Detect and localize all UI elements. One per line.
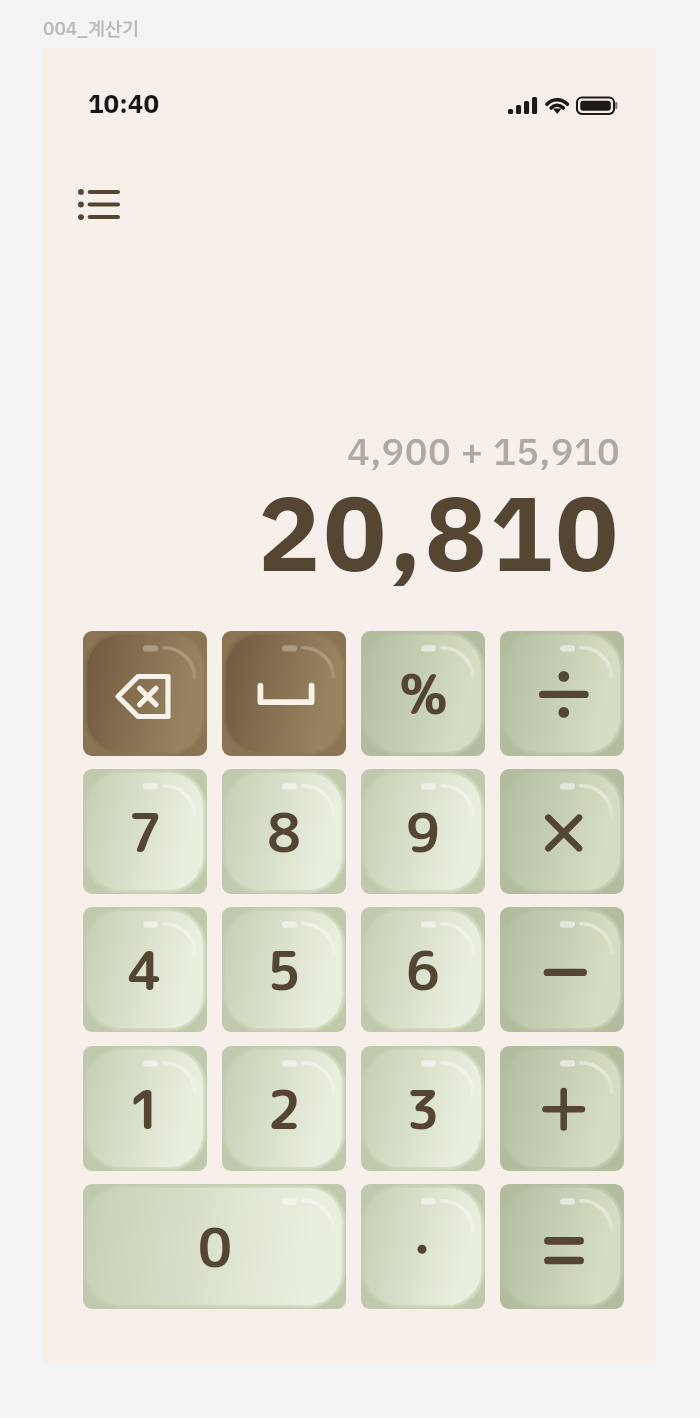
staticText: 7 bbox=[128, 795, 162, 869]
staticText: 5 bbox=[267, 933, 301, 1007]
staticText: 9 bbox=[406, 795, 440, 869]
staticText: 0 bbox=[198, 1210, 232, 1284]
button[interactable]: Space bbox=[222, 631, 346, 756]
button[interactable]: Equals bbox=[500, 1184, 624, 1309]
staticText: % bbox=[399, 655, 448, 732]
button[interactable]: Multiply bbox=[500, 769, 624, 894]
button[interactable]: 4 bbox=[83, 907, 207, 1032]
button[interactable]: History bbox=[63, 169, 133, 239]
button[interactable]: 1 bbox=[83, 1046, 207, 1171]
button[interactable]: Plus bbox=[500, 1046, 624, 1171]
button[interactable]: 2 bbox=[222, 1046, 346, 1171]
button[interactable]: 6 bbox=[361, 907, 485, 1032]
staticText: 6 bbox=[406, 933, 440, 1007]
staticText: 004_계산기 bbox=[43, 14, 139, 43]
staticText: 4,900 + 15,910 bbox=[347, 424, 621, 481]
button[interactable]: 5 bbox=[222, 907, 346, 1032]
button[interactable]: 8 bbox=[222, 769, 346, 894]
staticText: 10:40 bbox=[88, 85, 159, 124]
button[interactable]: 7 bbox=[83, 769, 207, 894]
button[interactable]: 9 bbox=[361, 769, 485, 894]
staticText: 8 bbox=[267, 795, 301, 869]
staticText: 2 bbox=[267, 1072, 301, 1146]
staticText: 20,810 bbox=[258, 458, 621, 614]
button[interactable]: Backspace bbox=[83, 631, 207, 756]
button[interactable]: Decimal point bbox=[361, 1184, 485, 1309]
button[interactable]: Percent bbox=[361, 631, 485, 756]
button[interactable]: 3 bbox=[361, 1046, 485, 1171]
staticText: 3 bbox=[406, 1072, 440, 1146]
button[interactable]: 0 bbox=[83, 1184, 346, 1309]
button[interactable]: Divide bbox=[500, 631, 624, 756]
staticText: 1 bbox=[128, 1072, 162, 1146]
button[interactable]: Minus bbox=[500, 907, 624, 1032]
staticText: 4 bbox=[128, 933, 162, 1007]
